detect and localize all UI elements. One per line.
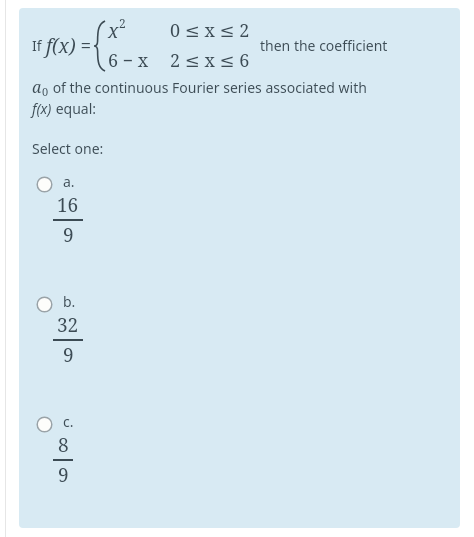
staticText: b. — [63, 292, 76, 311]
staticText: 9 — [63, 342, 74, 368]
button[interactable]: c. — [19, 410, 91, 490]
staticText: 2 ≤ x ≤ 6 — [170, 48, 250, 73]
staticText: equal: — [52, 99, 97, 118]
staticText: 0 ≤ x ≤ 2 — [170, 18, 250, 43]
staticText: x — [108, 18, 119, 44]
staticText: f(x) = — [46, 33, 92, 59]
button[interactable]: b. — [19, 290, 101, 370]
staticText: 32 — [57, 312, 79, 338]
staticText: a — [32, 76, 42, 98]
staticText: 2 — [119, 15, 126, 31]
staticText: 8 — [58, 432, 69, 458]
staticText: c. — [63, 412, 74, 431]
staticText: Select one: — [32, 139, 104, 158]
staticText: If — [32, 36, 46, 55]
staticText: 6 − x — [108, 48, 149, 73]
staticText: 9 — [58, 462, 69, 488]
staticText: 16 — [57, 192, 79, 218]
staticText: of the continuous Fourier series associa… — [49, 78, 367, 97]
staticText: f(x) — [32, 99, 52, 118]
staticText: 0 — [42, 84, 49, 99]
staticText: a. — [63, 172, 75, 191]
button[interactable]: a. — [19, 170, 101, 250]
other: Multiple choice question — [19, 8, 460, 9]
staticText: then the coefficient — [260, 36, 388, 55]
staticText: 9 — [63, 222, 74, 248]
